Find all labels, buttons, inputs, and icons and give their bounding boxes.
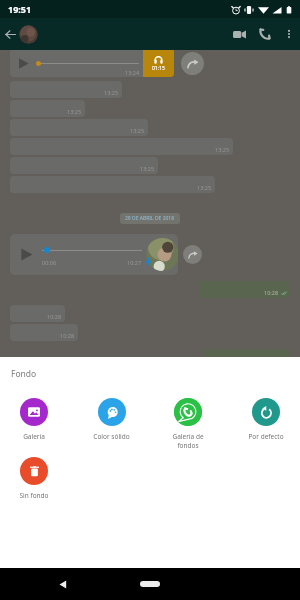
staticText: 00:06 bbox=[42, 259, 57, 266]
button[interactable]: 10:28 bbox=[200, 281, 290, 298]
staticText: Color sólido bbox=[93, 432, 130, 441]
button[interactable]: Sender photo bbox=[146, 238, 178, 271]
button[interactable]: Por defecto bbox=[228, 398, 300, 441]
staticText: 13:25 bbox=[197, 184, 212, 191]
staticText: Por defecto bbox=[248, 432, 284, 441]
staticText: 10:27 bbox=[127, 259, 142, 266]
button[interactable]: Home bbox=[140, 581, 160, 587]
staticText: 13:25 bbox=[67, 108, 82, 115]
button[interactable]: Galería bbox=[0, 398, 72, 441]
staticText: Fondo bbox=[11, 368, 37, 380]
staticText: 01:15 bbox=[152, 65, 165, 72]
staticText: 13:25 bbox=[140, 165, 155, 172]
button[interactable]: 13:24 bbox=[10, 50, 174, 77]
button[interactable]: Color sólido bbox=[73, 398, 149, 441]
staticText: 10:28 bbox=[60, 332, 75, 339]
staticText: 13:25 bbox=[215, 146, 230, 153]
button[interactable]: Back bbox=[51, 572, 75, 596]
button[interactable]: 13:25 bbox=[10, 100, 85, 117]
staticText: 19:51 bbox=[8, 3, 32, 15]
button[interactable]: 00:06 bbox=[10, 234, 178, 275]
button[interactable]: Forward bbox=[183, 245, 202, 264]
button[interactable]: Voice call bbox=[252, 18, 278, 50]
staticText: 13:25 bbox=[130, 127, 145, 134]
staticText: 10:28 bbox=[264, 289, 279, 296]
button[interactable]: 10:28 bbox=[10, 305, 65, 322]
staticText: Galería bbox=[23, 432, 45, 441]
staticText: Galería de fondos bbox=[172, 432, 204, 450]
staticText: Sin fondo bbox=[19, 491, 49, 500]
staticText: 29 DE ABRIL DE 2018 bbox=[125, 215, 175, 222]
staticText: 13:24 bbox=[125, 69, 140, 76]
button[interactable]: Contact photo bbox=[19, 25, 38, 44]
button[interactable]: More options bbox=[278, 18, 300, 50]
button[interactable]: 10:28 bbox=[10, 324, 78, 341]
button[interactable]: Video call bbox=[226, 18, 252, 50]
staticText: 10:28 bbox=[47, 313, 62, 320]
button[interactable]: Galería de fondos bbox=[150, 398, 226, 450]
button[interactable]: Forward bbox=[181, 52, 204, 75]
button[interactable]: Back bbox=[0, 18, 20, 50]
button[interactable]: 29 DE ABRIL DE 2018 bbox=[125, 215, 175, 222]
staticText: 13:25 bbox=[104, 89, 119, 96]
button[interactable]: Sin fondo bbox=[0, 457, 72, 500]
button[interactable]: 10:28 bbox=[204, 349, 290, 366]
